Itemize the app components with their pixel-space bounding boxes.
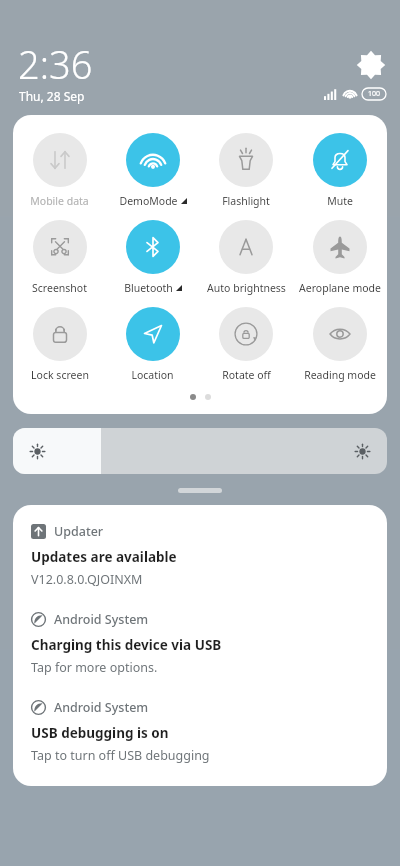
button[interactable]: Android System [31,611,369,676]
staticText: Tap to turn off USB debugging [31,747,210,764]
button[interactable]: Brightness [13,428,387,474]
staticText: Bluetooth [124,281,173,295]
button[interactable]: Updater [31,523,369,588]
staticText: Lock screen [31,368,89,382]
button[interactable]: Lock screen [13,305,106,384]
staticText: Tap for more options. [31,659,158,676]
staticText: USB debugging is on [31,724,169,742]
staticText: Flashlight [222,194,270,208]
staticText: 2:36 [18,38,93,90]
button[interactable]: Location [106,305,199,384]
staticText: Updates are available [31,548,177,566]
button[interactable]: Bluetooth [106,218,199,297]
staticText: 100 [368,89,381,99]
staticText: Screenshot [32,281,87,295]
button[interactable]: Screenshot [13,218,106,297]
staticText: Updater [54,523,104,540]
button[interactable]: Mobile data [13,131,106,210]
button[interactable]: Auto brightness [199,218,293,297]
button[interactable]: Mute [293,131,387,210]
staticText: Mute [327,194,353,208]
staticText: DemoMode [119,194,178,208]
button[interactable]: Settings [356,50,386,80]
button[interactable]: Android System [31,699,369,764]
staticText: Aeroplane mode [299,281,381,295]
button[interactable]: Aeroplane mode [293,218,387,297]
button[interactable]: DemoMode [106,131,199,210]
staticText: Rotate off [222,368,271,382]
staticText: Thu, 28 Sep [19,88,85,104]
button[interactable]: Rotate off [199,305,293,384]
button[interactable]: Reading mode [293,305,387,384]
staticText: Android System [54,699,149,716]
staticText: Reading mode [304,368,376,382]
staticText: Mobile data [30,194,89,208]
staticText: Charging this device via USB [31,636,222,654]
staticText: V12.0.8.0.QJOINXM [31,571,143,588]
staticText: Auto brightness [207,281,286,295]
staticText: Android System [54,611,149,628]
staticText: Location [131,368,174,382]
button[interactable]: Flashlight [199,131,293,210]
